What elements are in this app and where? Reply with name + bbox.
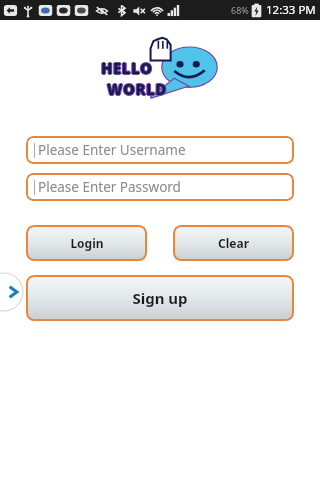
staticText: 12:33 PM bbox=[266, 2, 316, 18]
button[interactable]: Login bbox=[26, 225, 147, 261]
staticText: HELLO bbox=[101, 57, 153, 77]
staticText: WORLD bbox=[107, 78, 167, 98]
staticText: WORLD bbox=[107, 80, 167, 100]
staticText: Login bbox=[70, 235, 104, 251]
staticText: WORLD bbox=[107, 79, 167, 99]
staticText: HELLO bbox=[100, 58, 152, 78]
staticText: Please Enter Password bbox=[38, 178, 181, 196]
button[interactable]: Sign up bbox=[26, 275, 294, 321]
button[interactable]: Clear bbox=[173, 225, 294, 261]
staticText: HELLO bbox=[101, 58, 153, 78]
staticText: Sign up bbox=[132, 288, 188, 308]
staticText: Please Enter Username bbox=[38, 141, 186, 159]
button[interactable]: Please Enter Password bbox=[26, 173, 294, 201]
staticText: HELLO bbox=[101, 59, 153, 79]
button[interactable]: Please Enter Username bbox=[26, 136, 294, 164]
staticText: 68% bbox=[231, 4, 249, 16]
button[interactable]: Open drawer bbox=[0, 272, 24, 312]
staticText: Clear bbox=[218, 235, 249, 251]
staticText: WORLD bbox=[108, 79, 168, 99]
staticText: WORLD bbox=[106, 79, 166, 99]
staticText: HELLO bbox=[102, 58, 154, 78]
